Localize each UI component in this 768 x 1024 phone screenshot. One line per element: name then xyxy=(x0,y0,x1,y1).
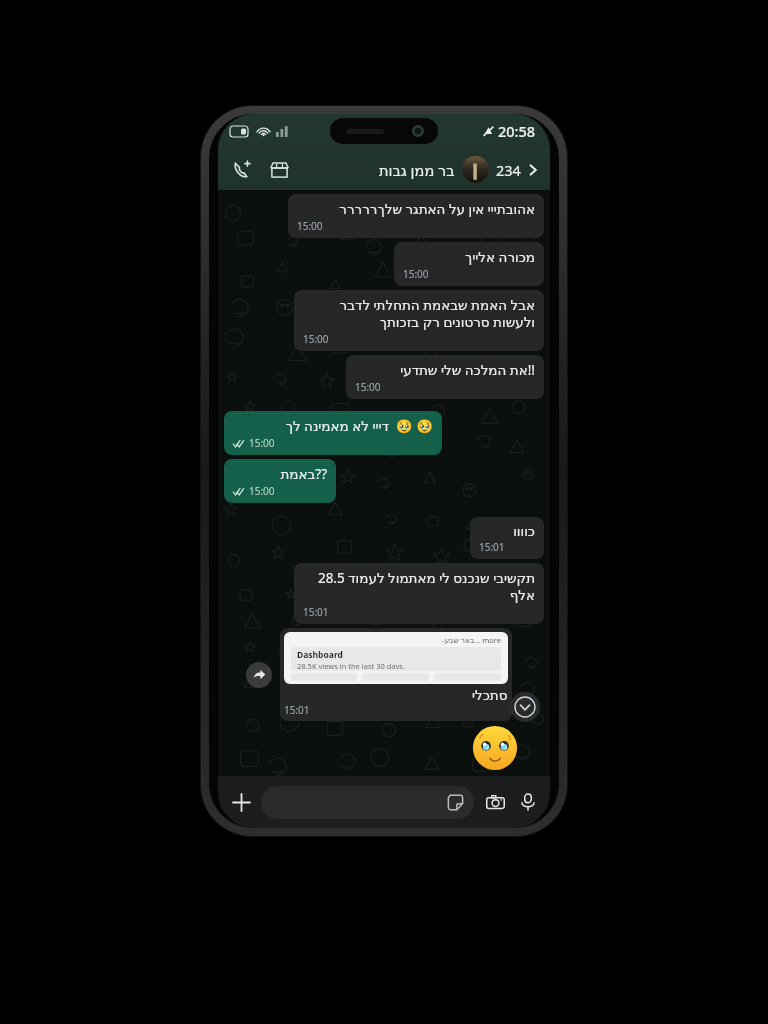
button[interactable]: דייי לא מאמינה לך 🥹 🥹 xyxy=(224,411,442,455)
button[interactable]: Business xyxy=(264,154,294,184)
button[interactable]: Scroll to bottom xyxy=(510,692,540,722)
staticText: כוווו xyxy=(479,523,535,539)
button[interactable]: Voice message xyxy=(515,789,541,815)
button[interactable]: כוווו xyxy=(470,517,544,559)
staticText: 15:00 xyxy=(355,380,381,394)
staticText: סתכלי xyxy=(472,687,508,703)
button[interactable]: Camera xyxy=(482,789,508,815)
staticText: 28.5K views in the last 30 days. xyxy=(297,661,405,669)
staticText: -באר שבע... more xyxy=(442,635,501,645)
button[interactable]: Attach xyxy=(227,788,255,816)
button[interactable]: אבל האמת שבאמת התחלתי לדבר ולעשות סרטוני… xyxy=(294,290,544,351)
staticText: אהובתייי אין על האתגר שלךררררר xyxy=(297,200,535,218)
staticText: בר ממן גבות xyxy=(379,160,455,180)
staticText: באמת?? xyxy=(233,465,327,483)
staticText: דייי לא מאמינה לך 🥹 🥹 xyxy=(233,417,433,435)
staticText: 15:01 xyxy=(303,605,329,619)
staticText: 15:00 xyxy=(403,267,429,281)
button[interactable]: אהובתייי אין על האתגר שלךררררר xyxy=(288,194,544,238)
staticText: 234 xyxy=(496,160,521,180)
button[interactable]: Forward xyxy=(246,662,272,688)
staticText: 15:00 xyxy=(303,332,329,346)
staticText: 15:01 xyxy=(479,540,505,554)
button[interactable]: תקשיבי שנכנס לי מאתמול לעמוד 28.5 אלף xyxy=(294,563,544,624)
staticText: 15:01 xyxy=(284,703,310,717)
staticText: תקשיבי שנכנס לי מאתמול לעמוד 28.5 אלף xyxy=(303,569,535,604)
button[interactable]: -באר שבע... more xyxy=(280,628,512,721)
staticText: אבל האמת שבאמת התחלתי לדבר ולעשות סרטוני… xyxy=(303,296,535,331)
staticText: 15:00 xyxy=(249,436,275,450)
staticText: מכורה אלייך xyxy=(403,248,535,266)
staticText: Dashboard xyxy=(297,649,343,661)
button[interactable] xyxy=(261,786,474,819)
staticText: את המלכה שלי שתדעי!! xyxy=(355,361,535,379)
button[interactable]: מכורה אלייך xyxy=(394,242,544,286)
button[interactable]: Call xyxy=(228,154,258,184)
staticText: 15:00 xyxy=(297,219,323,233)
button[interactable]: את המלכה שלי שתדעי!! xyxy=(346,355,544,399)
button[interactable]: בר ממן גבות xyxy=(379,156,540,183)
staticText: 20:58 xyxy=(498,121,536,141)
button[interactable]: באמת?? xyxy=(224,459,336,503)
staticText: 15:00 xyxy=(249,484,275,498)
